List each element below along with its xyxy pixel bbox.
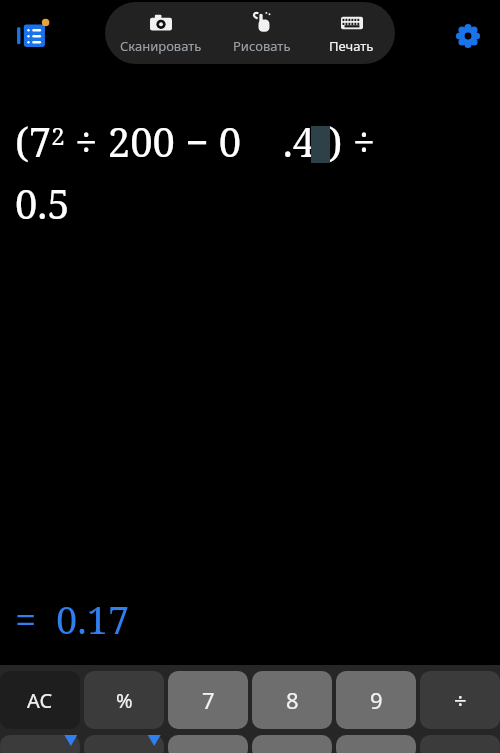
button[interactable]: 9	[336, 671, 416, 729]
staticText: 9	[370, 685, 383, 715]
staticText: 8	[286, 685, 299, 715]
staticText: 7	[202, 685, 215, 715]
staticText: AC	[27, 687, 53, 714]
button[interactable]: Settings	[444, 12, 492, 60]
button[interactable]: History	[8, 12, 56, 60]
button[interactable]: Рисовать	[216, 2, 308, 64]
button[interactable]	[168, 735, 248, 753]
staticText: Сканировать	[120, 37, 202, 55]
button[interactable]: 8	[252, 671, 332, 729]
button[interactable]: Сканировать	[105, 2, 216, 64]
button[interactable]	[420, 735, 500, 753]
staticText: = 0.17	[15, 593, 130, 645]
button[interactable]	[84, 735, 164, 753]
button[interactable]: ÷	[420, 671, 500, 729]
staticText: Печать	[329, 37, 374, 55]
staticText: ÷	[454, 685, 467, 715]
staticText: 0.5	[15, 176, 70, 230]
staticText: Рисовать	[233, 37, 291, 55]
staticText: %	[116, 687, 133, 714]
button[interactable]	[0, 735, 80, 753]
button[interactable]	[252, 735, 332, 753]
button[interactable]: 7	[168, 671, 248, 729]
button[interactable]: Печать	[308, 2, 395, 64]
button[interactable]: %	[84, 671, 164, 729]
button[interactable]: AC	[0, 671, 80, 729]
staticText: (72 ÷ 200 − 0 .42) ÷	[15, 114, 376, 168]
button[interactable]	[336, 735, 416, 753]
